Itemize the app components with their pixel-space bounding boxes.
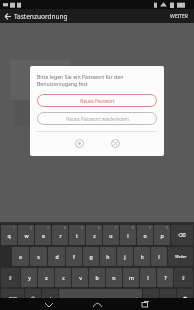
button[interactable]: k xyxy=(134,247,150,266)
staticText: Neues Passwort wiederholen xyxy=(66,116,129,122)
staticText: 7 xyxy=(115,226,117,230)
staticText: . xyxy=(167,295,169,302)
staticText: b xyxy=(95,274,99,281)
button[interactable]: b xyxy=(89,268,105,287)
button[interactable]: a xyxy=(12,247,29,266)
staticText: s xyxy=(37,253,40,260)
button[interactable]: t xyxy=(69,225,85,245)
button[interactable]: s xyxy=(30,247,47,266)
staticText: ⇧ xyxy=(8,275,13,281)
button[interactable]: Neues Passwort wiederholen xyxy=(37,112,157,125)
button[interactable]: u xyxy=(103,225,119,245)
button[interactable]: x xyxy=(38,268,54,287)
staticText: ☻ xyxy=(182,296,188,302)
button[interactable]: h xyxy=(100,247,116,266)
button[interactable]: g xyxy=(83,247,99,266)
staticText: Bitte legen Sie ein Passwort für den Ben… xyxy=(37,73,157,87)
staticText: r xyxy=(59,232,62,239)
button[interactable]: Startbildschirm xyxy=(84,298,110,310)
staticText: k xyxy=(141,253,144,260)
staticText: m xyxy=(129,274,134,281)
button[interactable]: Bestätigen xyxy=(72,136,86,150)
staticText: Neues Passwort xyxy=(80,98,115,104)
staticText: ? xyxy=(164,274,167,281)
button[interactable]: y xyxy=(21,268,37,287)
button[interactable]: Löschen xyxy=(171,225,193,245)
staticText: j xyxy=(124,253,126,260)
button[interactable]: Zurück xyxy=(36,298,62,310)
button[interactable]: Abbrechen xyxy=(108,136,122,150)
button[interactable]: q xyxy=(1,225,17,245)
button[interactable]: f xyxy=(66,247,82,266)
button[interactable]: Neues Passwort xyxy=(37,94,157,107)
button[interactable]: n xyxy=(106,268,122,287)
staticText: Weiter xyxy=(175,254,187,259)
button[interactable]: , xyxy=(143,289,159,308)
button[interactable]: Spracheingabe xyxy=(177,289,193,308)
button[interactable]: Umschalt rechts xyxy=(174,268,193,287)
staticText: 4 xyxy=(64,226,66,230)
button[interactable]: l xyxy=(151,247,167,266)
button[interactable]: ! xyxy=(140,268,156,287)
staticText: Tastenzuordnung xyxy=(14,12,68,21)
staticText: 1 xyxy=(13,226,15,230)
button[interactable]: Emoji xyxy=(25,289,41,308)
staticText: n xyxy=(112,274,116,281)
button[interactable]: v xyxy=(72,268,88,287)
staticText: 8 xyxy=(132,226,134,230)
staticText: d xyxy=(55,253,59,260)
staticText: v xyxy=(79,274,82,281)
staticText: ⌫ xyxy=(178,232,186,238)
staticText: o xyxy=(143,232,147,239)
button[interactable]: ? xyxy=(157,268,173,287)
staticText: , xyxy=(150,295,152,302)
staticText: y xyxy=(28,274,31,281)
staticText: / xyxy=(49,295,51,302)
staticText: WEITER xyxy=(170,13,189,20)
staticText: 0 xyxy=(166,226,168,230)
button[interactable]: WEITER xyxy=(165,10,194,23)
button[interactable]: w xyxy=(18,225,34,245)
staticText: u xyxy=(109,232,113,239)
staticText: l xyxy=(158,253,160,260)
staticText: z xyxy=(93,232,96,239)
button[interactable]: . xyxy=(160,289,176,308)
staticText: e xyxy=(42,232,45,239)
button[interactable]: d xyxy=(48,247,65,266)
staticText: 5 xyxy=(81,226,83,230)
button[interactable]: c xyxy=(55,268,71,287)
staticText: g xyxy=(89,253,93,260)
staticText: h xyxy=(106,253,110,260)
button[interactable]: Symbole xyxy=(1,289,24,308)
staticText: x xyxy=(45,274,48,281)
staticText: t xyxy=(76,232,78,239)
staticText: w xyxy=(24,232,29,239)
button[interactable]: r xyxy=(52,225,68,245)
staticText: q xyxy=(7,232,11,239)
staticText: ⇧ xyxy=(181,275,186,281)
staticText: a xyxy=(19,253,22,260)
button[interactable]: j xyxy=(117,247,133,266)
staticText: ☺ xyxy=(30,296,36,302)
button[interactable]: / xyxy=(42,289,58,308)
staticText: 9 xyxy=(149,226,151,230)
staticText: 6 xyxy=(98,226,100,230)
button[interactable]: Leerzeichen xyxy=(59,289,142,308)
button[interactable]: e xyxy=(35,225,51,245)
staticText: c xyxy=(62,274,65,281)
staticText: p xyxy=(160,232,164,239)
button[interactable]: i xyxy=(120,225,136,245)
button[interactable]: o xyxy=(137,225,153,245)
staticText: 3 xyxy=(47,226,49,230)
staticText: i xyxy=(127,232,129,239)
button[interactable]: m xyxy=(123,268,139,287)
staticText: f xyxy=(73,253,75,260)
button[interactable]: Übersicht xyxy=(132,298,158,310)
button[interactable]: Zurück xyxy=(0,9,14,23)
button[interactable]: Weiter xyxy=(168,247,193,266)
button[interactable]: p xyxy=(154,225,170,245)
button[interactable]: Umschalt xyxy=(1,268,20,287)
staticText: ?123 xyxy=(9,296,17,301)
button[interactable]: z xyxy=(86,225,102,245)
staticText: 2 xyxy=(30,226,32,230)
